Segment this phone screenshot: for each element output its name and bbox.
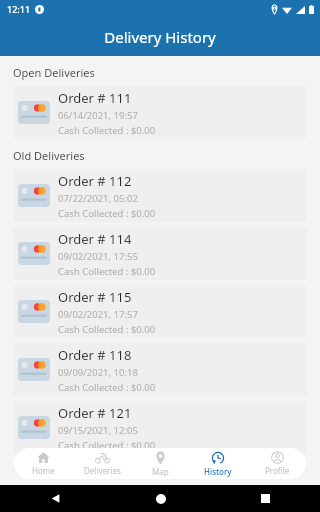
staticText: Delivery History [104, 27, 216, 47]
button[interactable]: Order # 121 [13, 401, 307, 454]
button[interactable]: Map [131, 448, 189, 479]
staticText: Order # 121 [58, 404, 132, 422]
other: Map [155, 451, 166, 465]
other: Home [37, 451, 50, 464]
staticText: 09/15/2021, 12:05 [58, 424, 138, 437]
button[interactable]: Order # 111 [13, 86, 307, 139]
staticText: Order # 114 [58, 230, 132, 248]
staticText: Order # 115 [58, 288, 132, 306]
button[interactable]: Deliveries [73, 448, 131, 479]
other: Back [50, 493, 61, 504]
button[interactable]: Profile [248, 448, 306, 479]
staticText: Map [152, 466, 169, 477]
other: Profile [271, 451, 284, 464]
staticText: 09/02/2021, 17:55 [58, 250, 138, 263]
staticText: Order # 118 [58, 346, 132, 364]
staticText: 09/02/2021, 17:57 [58, 308, 138, 321]
staticText: Home [32, 465, 55, 476]
staticText: Order # 112 [58, 172, 132, 190]
other: Home [156, 494, 166, 504]
staticText: Cash Collected : $0.00 [58, 381, 156, 394]
staticText: 07/22/2021, 05:02 [58, 192, 138, 205]
staticText: Cash Collected : $0.00 [58, 323, 156, 336]
staticText: Cash Collected : $0.00 [58, 265, 156, 278]
button[interactable]: Order # 115 [13, 285, 307, 338]
other: History [211, 451, 225, 465]
staticText: 12:11 [7, 3, 31, 15]
staticText: Old Deliveries [13, 148, 85, 163]
button[interactable]: Order # 112 [13, 169, 307, 222]
button[interactable]: Order # 114 [13, 227, 307, 280]
staticText: Cash Collected : $0.00 [58, 439, 156, 452]
button[interactable]: Order # 118 [13, 343, 307, 396]
staticText: History [204, 466, 232, 477]
staticText: Order # 111 [58, 89, 132, 107]
staticText: Deliveries [84, 465, 121, 476]
staticText: 09/09/2021, 10:18 [58, 366, 138, 379]
staticText: Cash Collected : $0.00 [58, 124, 156, 137]
button[interactable]: Home [14, 448, 72, 479]
staticText: Profile [265, 465, 290, 476]
staticText: 06/14/2021, 19:57 [58, 109, 138, 122]
button[interactable]: History [189, 448, 247, 479]
other: Deliveries [95, 451, 110, 464]
staticText: Open Deliveries [13, 65, 95, 80]
staticText: Cash Collected : $0.00 [58, 207, 156, 220]
